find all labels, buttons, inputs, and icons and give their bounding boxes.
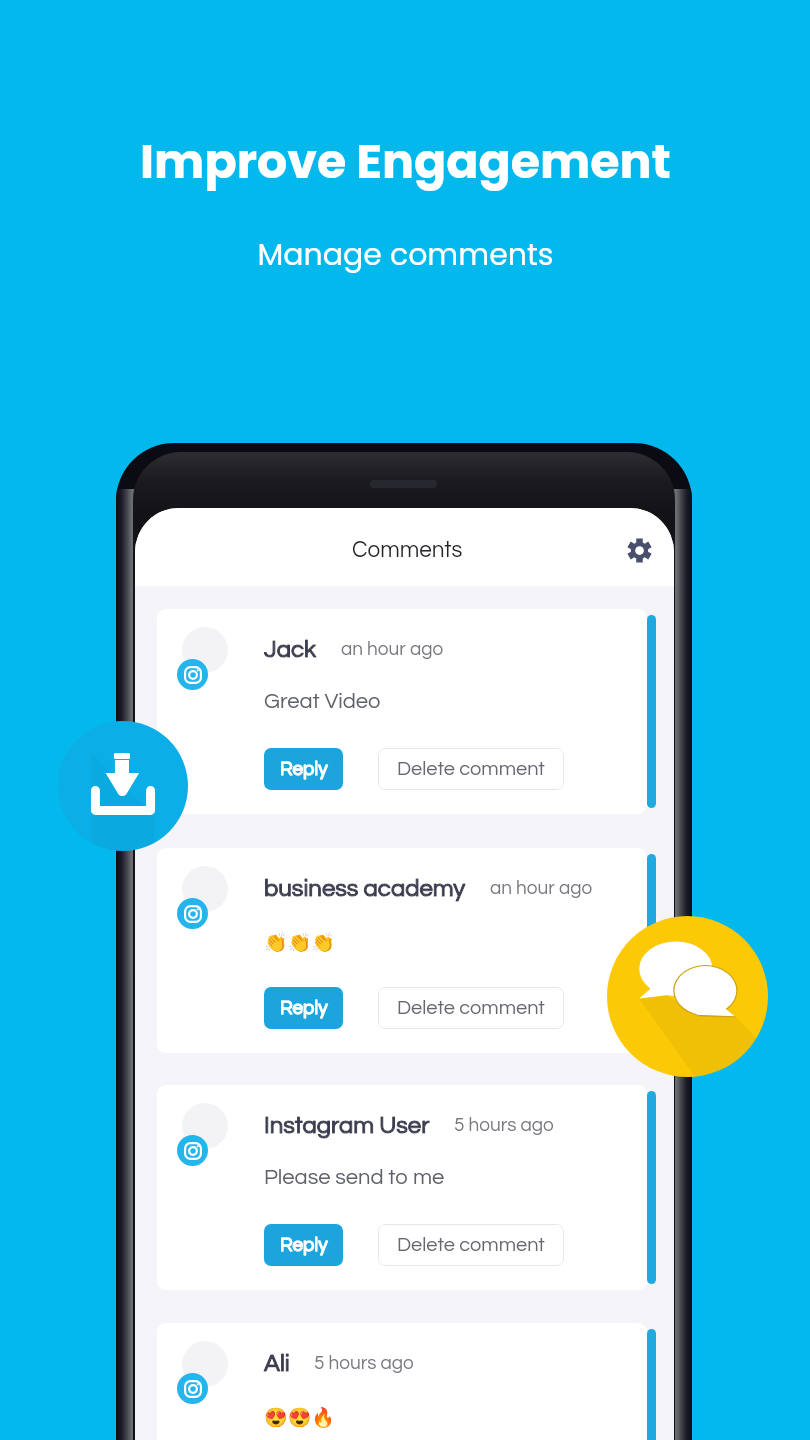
staticText: 👏👏👏 (264, 931, 335, 953)
button[interactable]: Download (58, 721, 188, 851)
button[interactable]: Jack (157, 609, 647, 814)
staticText: Ali (264, 1351, 290, 1376)
staticText: Ali (264, 1351, 290, 1376)
staticText: Manage comments (257, 234, 554, 276)
button[interactable]: Comments (607, 916, 768, 1077)
staticText: 5 hours ago (454, 1115, 554, 1135)
button[interactable]: Settings (615, 526, 663, 574)
button[interactable]: Delete comment (378, 748, 564, 790)
button[interactable]: Delete comment (378, 1224, 564, 1266)
staticText: business academy (264, 876, 466, 901)
staticText: Delete comment (397, 759, 545, 780)
staticText: Comments (352, 539, 463, 562)
staticText: Please send to me (264, 1166, 445, 1189)
staticText: 😍😍🔥 (264, 1406, 335, 1428)
staticText: Reply (280, 1235, 328, 1255)
staticText: Instagram User (264, 1113, 430, 1138)
staticText: Reply (280, 759, 328, 779)
button[interactable]: Reply (264, 1224, 343, 1266)
button[interactable]: Reply (264, 987, 343, 1029)
button[interactable]: Reply (264, 748, 343, 790)
staticText: 5 hours ago (314, 1353, 414, 1373)
staticText: an hour ago (490, 878, 593, 898)
button[interactable]: business academy (157, 848, 647, 1053)
button[interactable]: Instagram User (157, 1085, 647, 1290)
staticText: business academy (264, 876, 466, 901)
staticText: Instagram User (264, 1113, 430, 1138)
staticText: Jack (264, 637, 317, 662)
staticText: Reply (280, 1235, 328, 1255)
staticText: Jack (264, 637, 317, 662)
button[interactable]: Delete comment (378, 987, 564, 1029)
staticText: Reply (280, 998, 328, 1018)
staticText: Reply (280, 759, 328, 779)
staticText: Improve Engagement (140, 128, 671, 194)
staticText: Great Video (264, 690, 381, 713)
staticText: Reply (280, 998, 328, 1018)
button[interactable]: Ali (157, 1323, 647, 1440)
staticText: an hour ago (341, 639, 444, 659)
staticText: Delete comment (397, 998, 545, 1019)
staticText: Delete comment (397, 1235, 545, 1256)
